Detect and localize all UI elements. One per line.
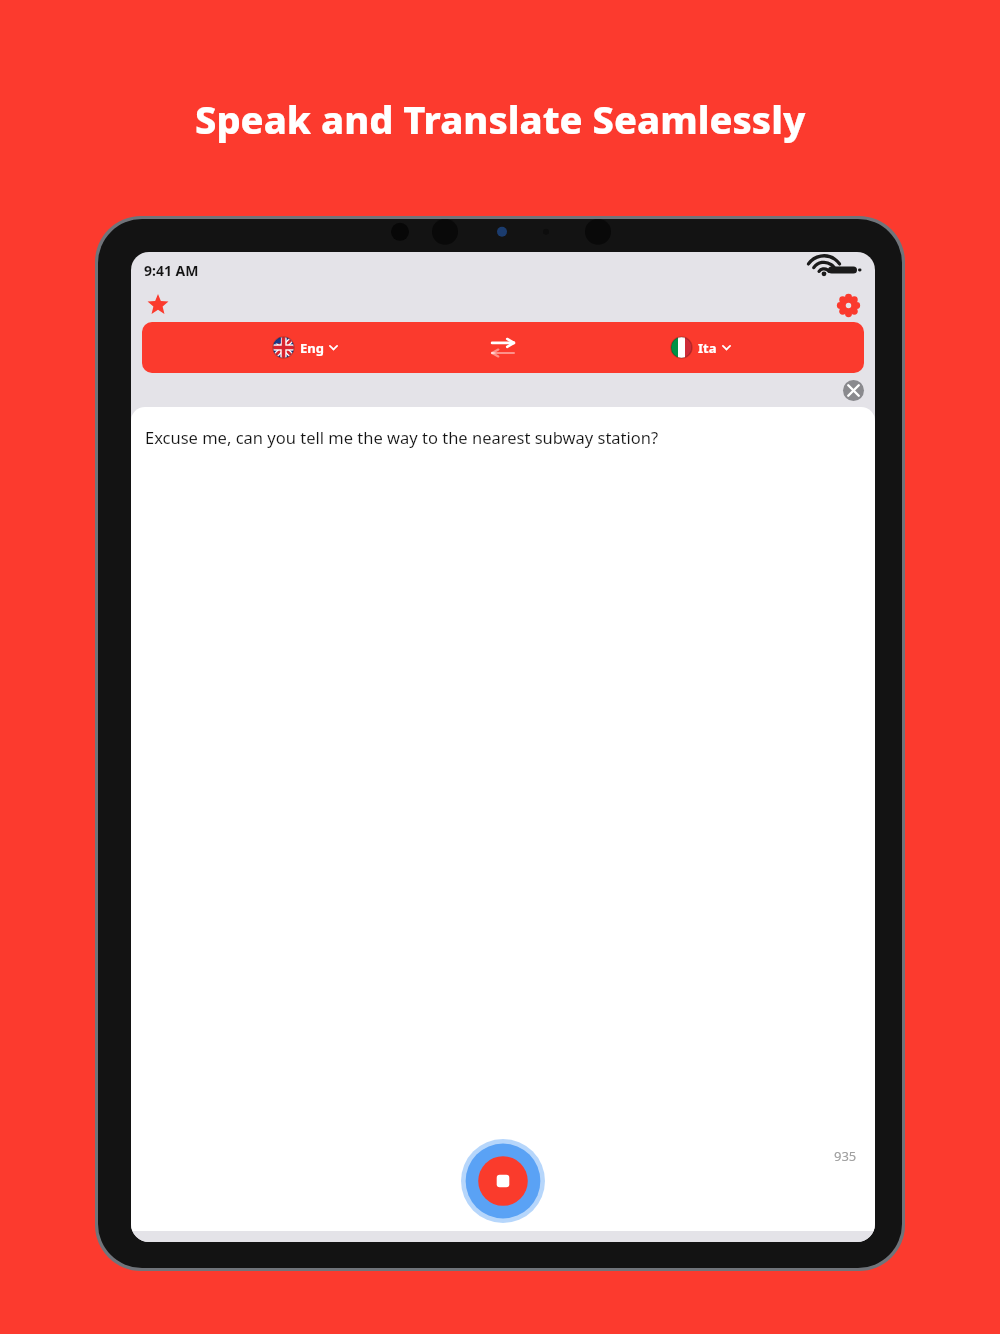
button[interactable]: Favorites (143, 290, 173, 320)
button[interactable]: Ita (537, 322, 864, 373)
button[interactable]: Eng (142, 322, 469, 373)
button[interactable]: Settings (833, 290, 863, 320)
staticText: 935 (834, 1147, 857, 1165)
button[interactable]: Clear text (843, 380, 864, 401)
staticText: Speak and Translate Seamlessly (195, 93, 806, 145)
button[interactable]: Swap languages (469, 322, 537, 373)
button[interactable]: Stop recording (461, 1139, 545, 1223)
staticText: Eng (300, 339, 324, 357)
staticText: Excuse me, can you tell me the way to th… (145, 426, 659, 448)
staticText: 9:41 AM (144, 261, 199, 280)
staticText: Ita (698, 339, 717, 357)
